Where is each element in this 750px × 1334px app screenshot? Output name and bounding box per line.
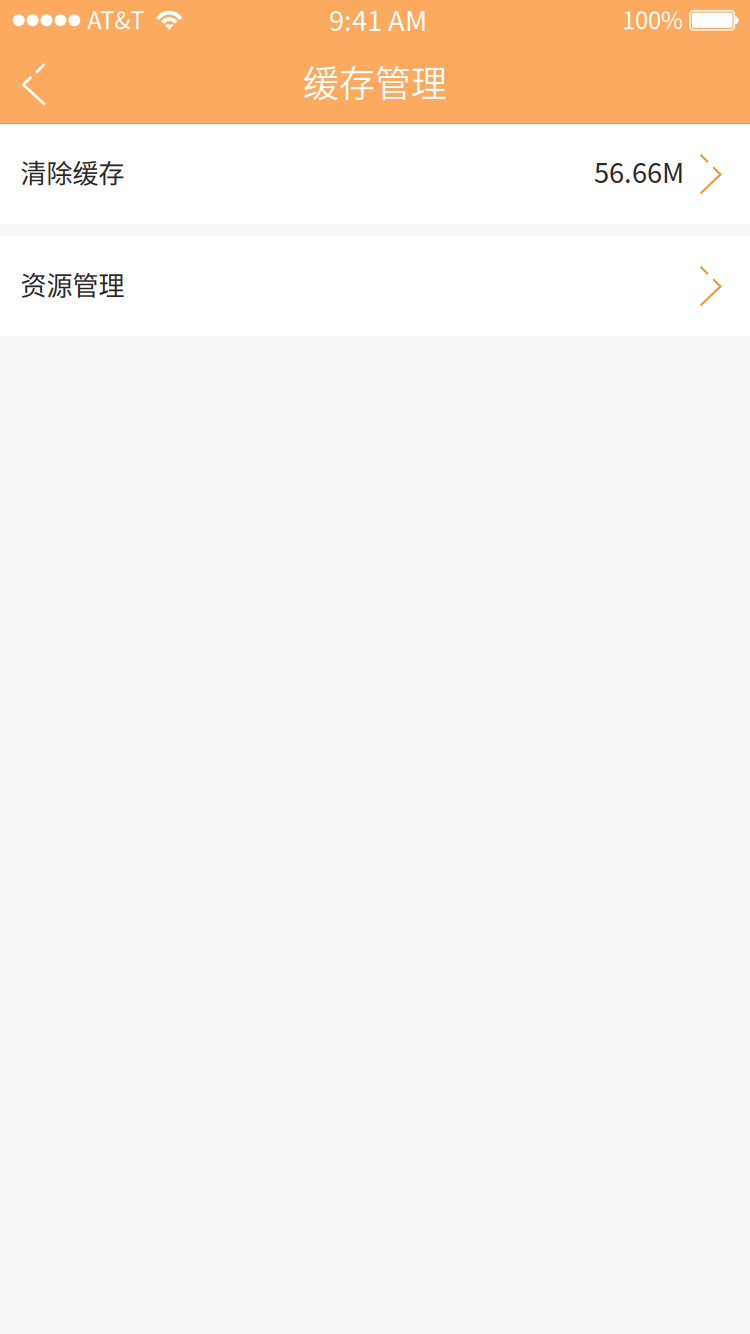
staticText: 清除缓存 (20, 153, 124, 191)
staticText: 56.66M (594, 151, 684, 191)
staticText: 100% (622, 1, 683, 36)
button[interactable]: Back (0, 40, 95, 122)
staticText: 9:41 AM (329, 0, 427, 39)
staticText: AT&T (87, 1, 144, 36)
staticText: 缓存管理 (303, 55, 447, 107)
staticText: 资源管理 (20, 265, 124, 303)
button[interactable]: 资源管理 (0, 236, 750, 336)
button[interactable]: 清除缓存 (0, 124, 750, 224)
